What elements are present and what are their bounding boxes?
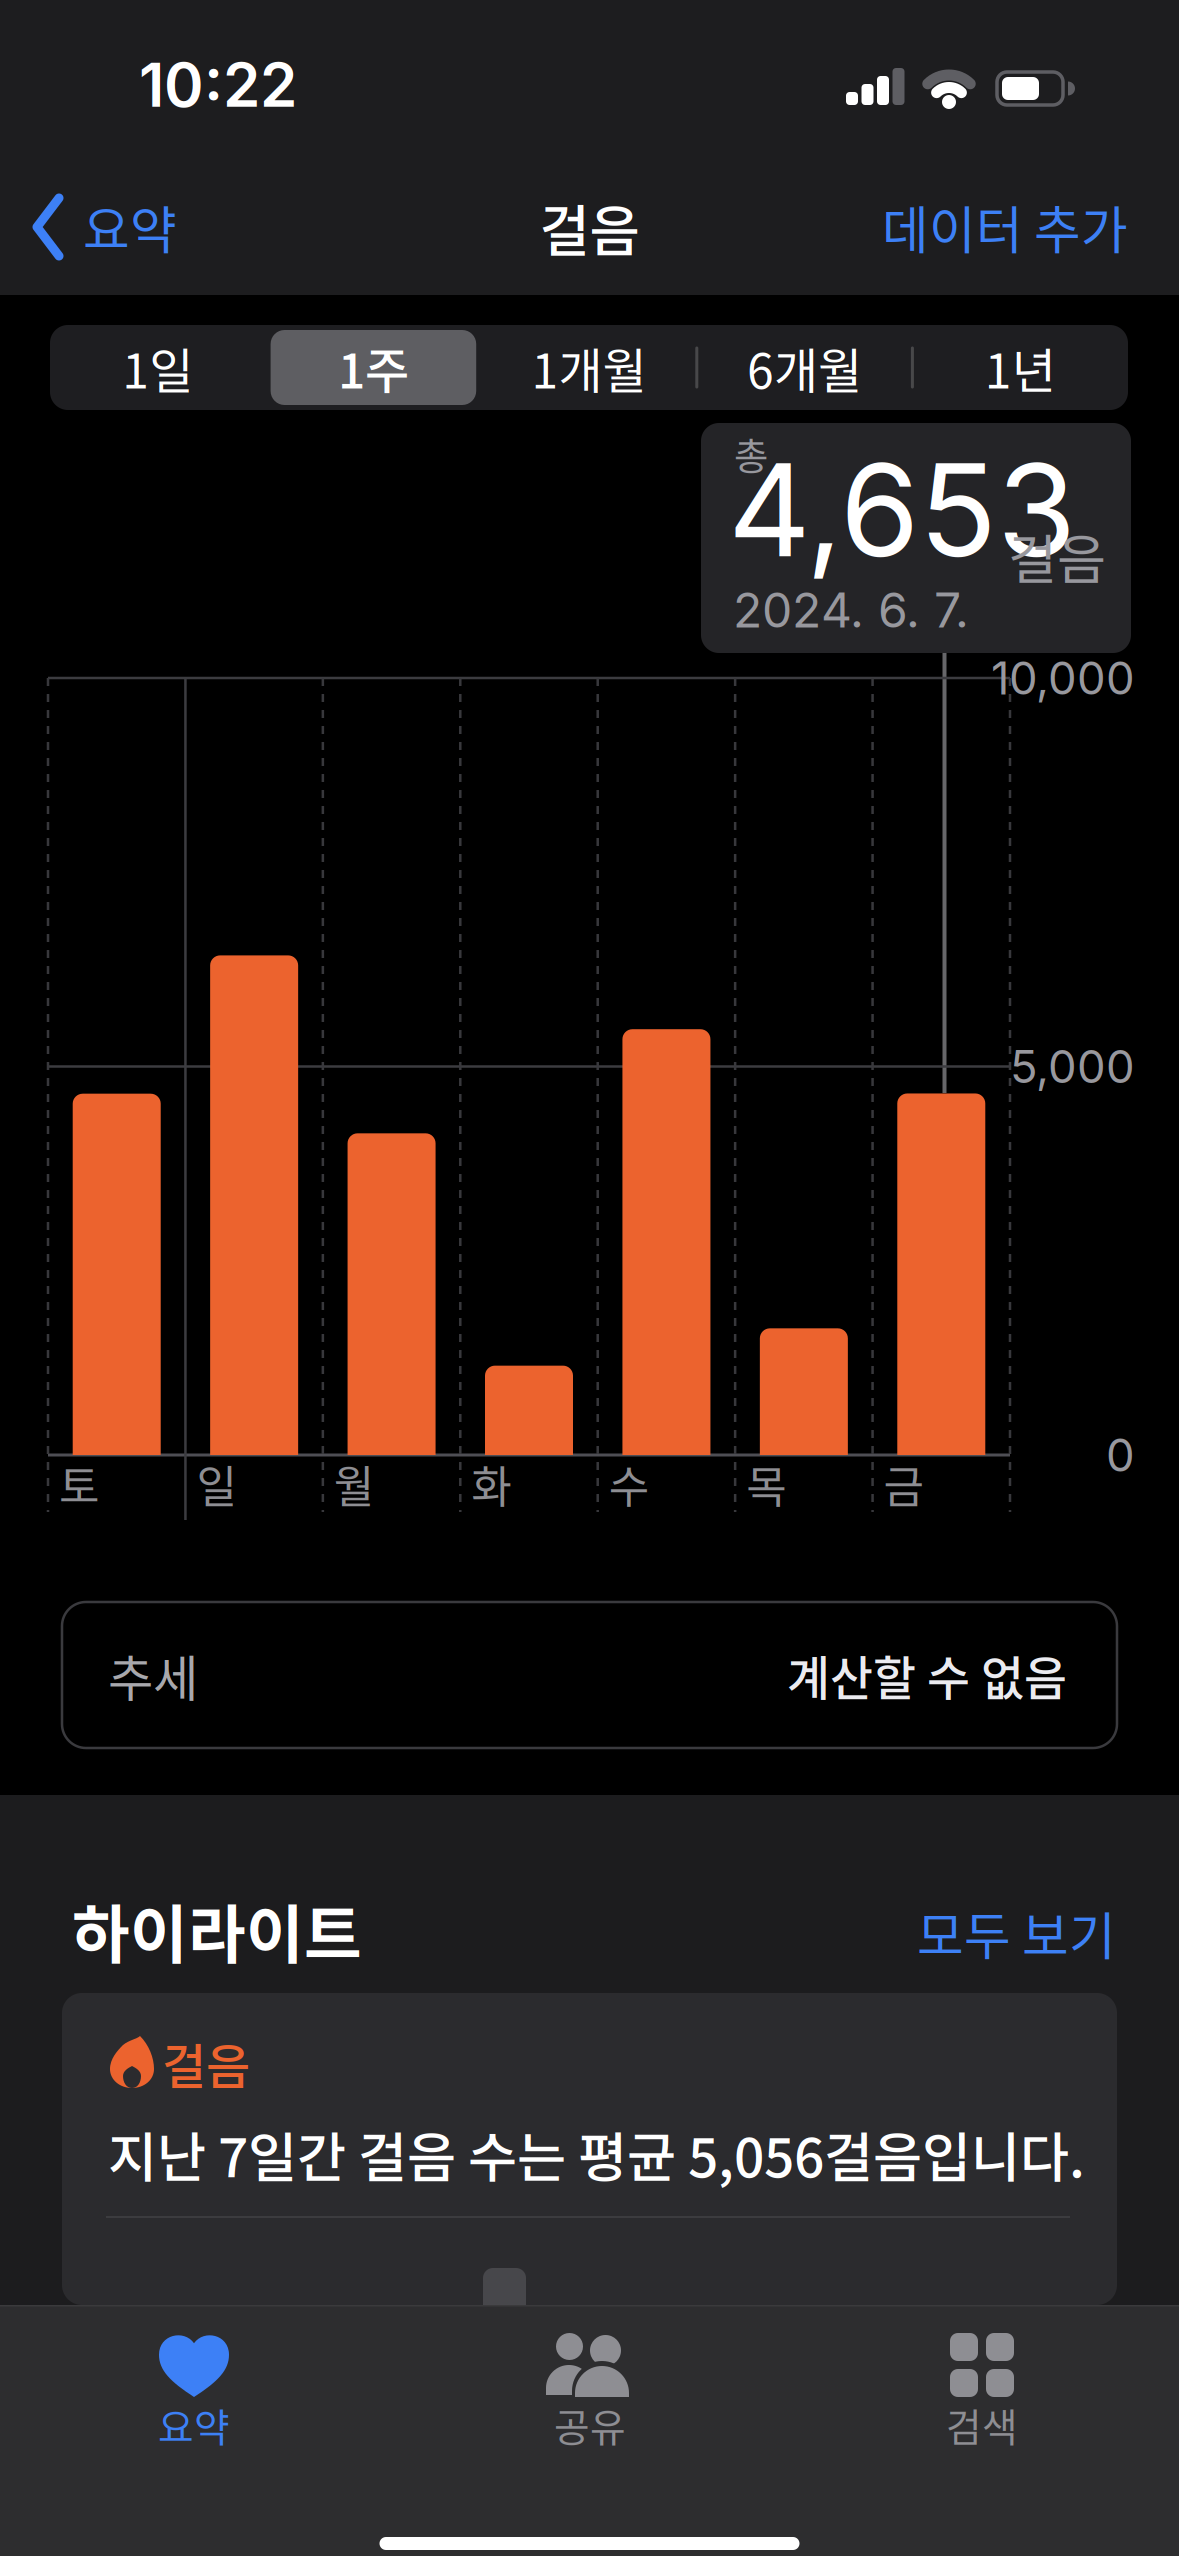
staticText: 데이터 추가	[882, 190, 1128, 264]
staticText: 요약	[83, 190, 177, 264]
staticText: 10:22	[139, 49, 297, 121]
staticText: 걸음	[1008, 517, 1106, 595]
button[interactable]: 1주	[266, 325, 481, 410]
button[interactable]: 1일	[50, 325, 266, 410]
staticText: 추세	[108, 1639, 198, 1711]
staticText: 1주	[338, 333, 409, 402]
staticText: 2024. 6. 7.	[733, 581, 969, 639]
staticText: 요약	[158, 2397, 230, 2453]
button[interactable]: 6개월	[697, 325, 912, 410]
button[interactable]: 데이터 추가	[828, 192, 1128, 262]
button[interactable]: 1개월	[481, 325, 697, 410]
staticText: 1일	[122, 333, 193, 402]
staticText: 0	[1106, 1428, 1135, 1482]
button[interactable]: 검색	[852, 2333, 1112, 2503]
staticText: 공유	[554, 2397, 626, 2453]
staticText: 화	[471, 1452, 511, 1516]
button[interactable]: 추세	[62, 1602, 1117, 1748]
staticText: 월	[334, 1452, 374, 1516]
staticText: 지난 7일간 걸음 수는 평균 5,056걸음입니다.	[108, 2115, 1085, 2193]
staticText: 검색	[946, 2397, 1018, 2453]
staticText: 하이라이트	[72, 1885, 362, 1975]
staticText: 5,000	[1010, 1039, 1135, 1094]
staticText: 1년	[985, 333, 1056, 402]
staticText: 걸음	[162, 2028, 250, 2098]
staticText: 토	[59, 1452, 99, 1516]
staticText: 6개월	[747, 333, 862, 402]
staticText: 금	[884, 1452, 924, 1516]
staticText: 계산할 수 없음	[787, 1641, 1067, 1709]
button[interactable]: 모두 보기	[816, 1903, 1116, 1963]
staticText: 모두 보기	[917, 1896, 1116, 1970]
button[interactable]: 요약	[64, 2333, 324, 2503]
staticText: 10,000	[991, 651, 1135, 705]
button[interactable]: 걸음	[62, 1993, 1117, 2305]
staticText: 목	[746, 1452, 786, 1516]
staticText: 1개월	[531, 333, 646, 402]
staticText: 일	[196, 1452, 236, 1516]
button[interactable]: 뒤로, 요약	[33, 192, 177, 262]
staticText: 4,653	[728, 432, 1076, 587]
button[interactable]: 공유	[460, 2333, 720, 2503]
staticText: 걸음	[539, 187, 639, 267]
staticText: 총	[734, 427, 768, 481]
button[interactable]: 1년	[912, 325, 1128, 410]
staticText: 수	[609, 1452, 649, 1516]
